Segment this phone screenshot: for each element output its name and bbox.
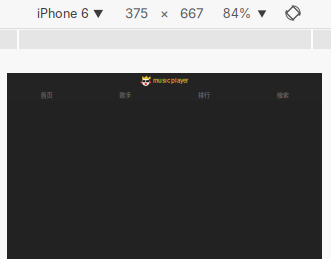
staticText: 歌手	[119, 90, 131, 99]
staticText: 375	[125, 5, 148, 21]
staticText: music player	[153, 77, 188, 84]
staticText: ×	[160, 5, 169, 21]
button[interactable]: 歌手	[86, 88, 165, 101]
button[interactable]: 搜索	[243, 88, 322, 101]
staticText: 排行	[198, 90, 210, 99]
button[interactable]: iPhone 6	[34, 1, 106, 25]
button[interactable]: 首页	[7, 88, 86, 101]
staticText: 首页	[40, 90, 52, 99]
staticText: 搜索	[277, 90, 289, 99]
staticText: 667	[180, 5, 204, 21]
button[interactable]: Rotate device	[282, 2, 304, 24]
staticText: iPhone 6	[37, 6, 89, 21]
staticText: 84%	[223, 6, 251, 21]
button[interactable]: 84%	[220, 1, 269, 25]
button[interactable]: 排行	[164, 88, 243, 101]
